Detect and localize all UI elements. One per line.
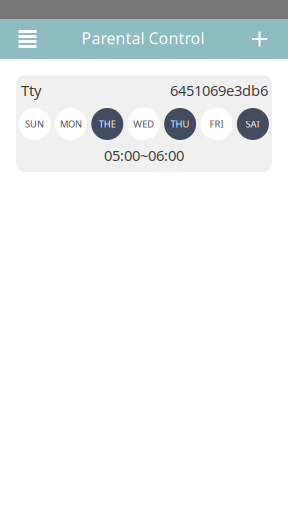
staticText: Tty [21,80,41,100]
staticText: SAT [245,118,260,130]
button[interactable]: MON [55,108,87,140]
staticText: Parental Control [81,27,204,49]
staticText: WED [133,118,154,130]
button[interactable]: SUN [18,108,50,140]
button[interactable]: Add schedule [231,19,288,59]
button[interactable]: Menu [0,19,55,59]
button[interactable]: SAT [237,108,269,140]
staticText: FRI [209,118,223,130]
staticText: MON [60,118,82,130]
button[interactable]: THE [91,108,123,140]
staticText: THU [171,118,190,130]
button[interactable]: THU [164,108,196,140]
staticText: SUN [25,118,44,130]
staticText: 05:00~06:00 [104,145,184,165]
staticText: 6451069e3db6 [170,80,268,100]
button[interactable]: FRI [200,108,232,140]
staticText: THE [99,118,116,130]
button[interactable]: WED [128,108,160,140]
